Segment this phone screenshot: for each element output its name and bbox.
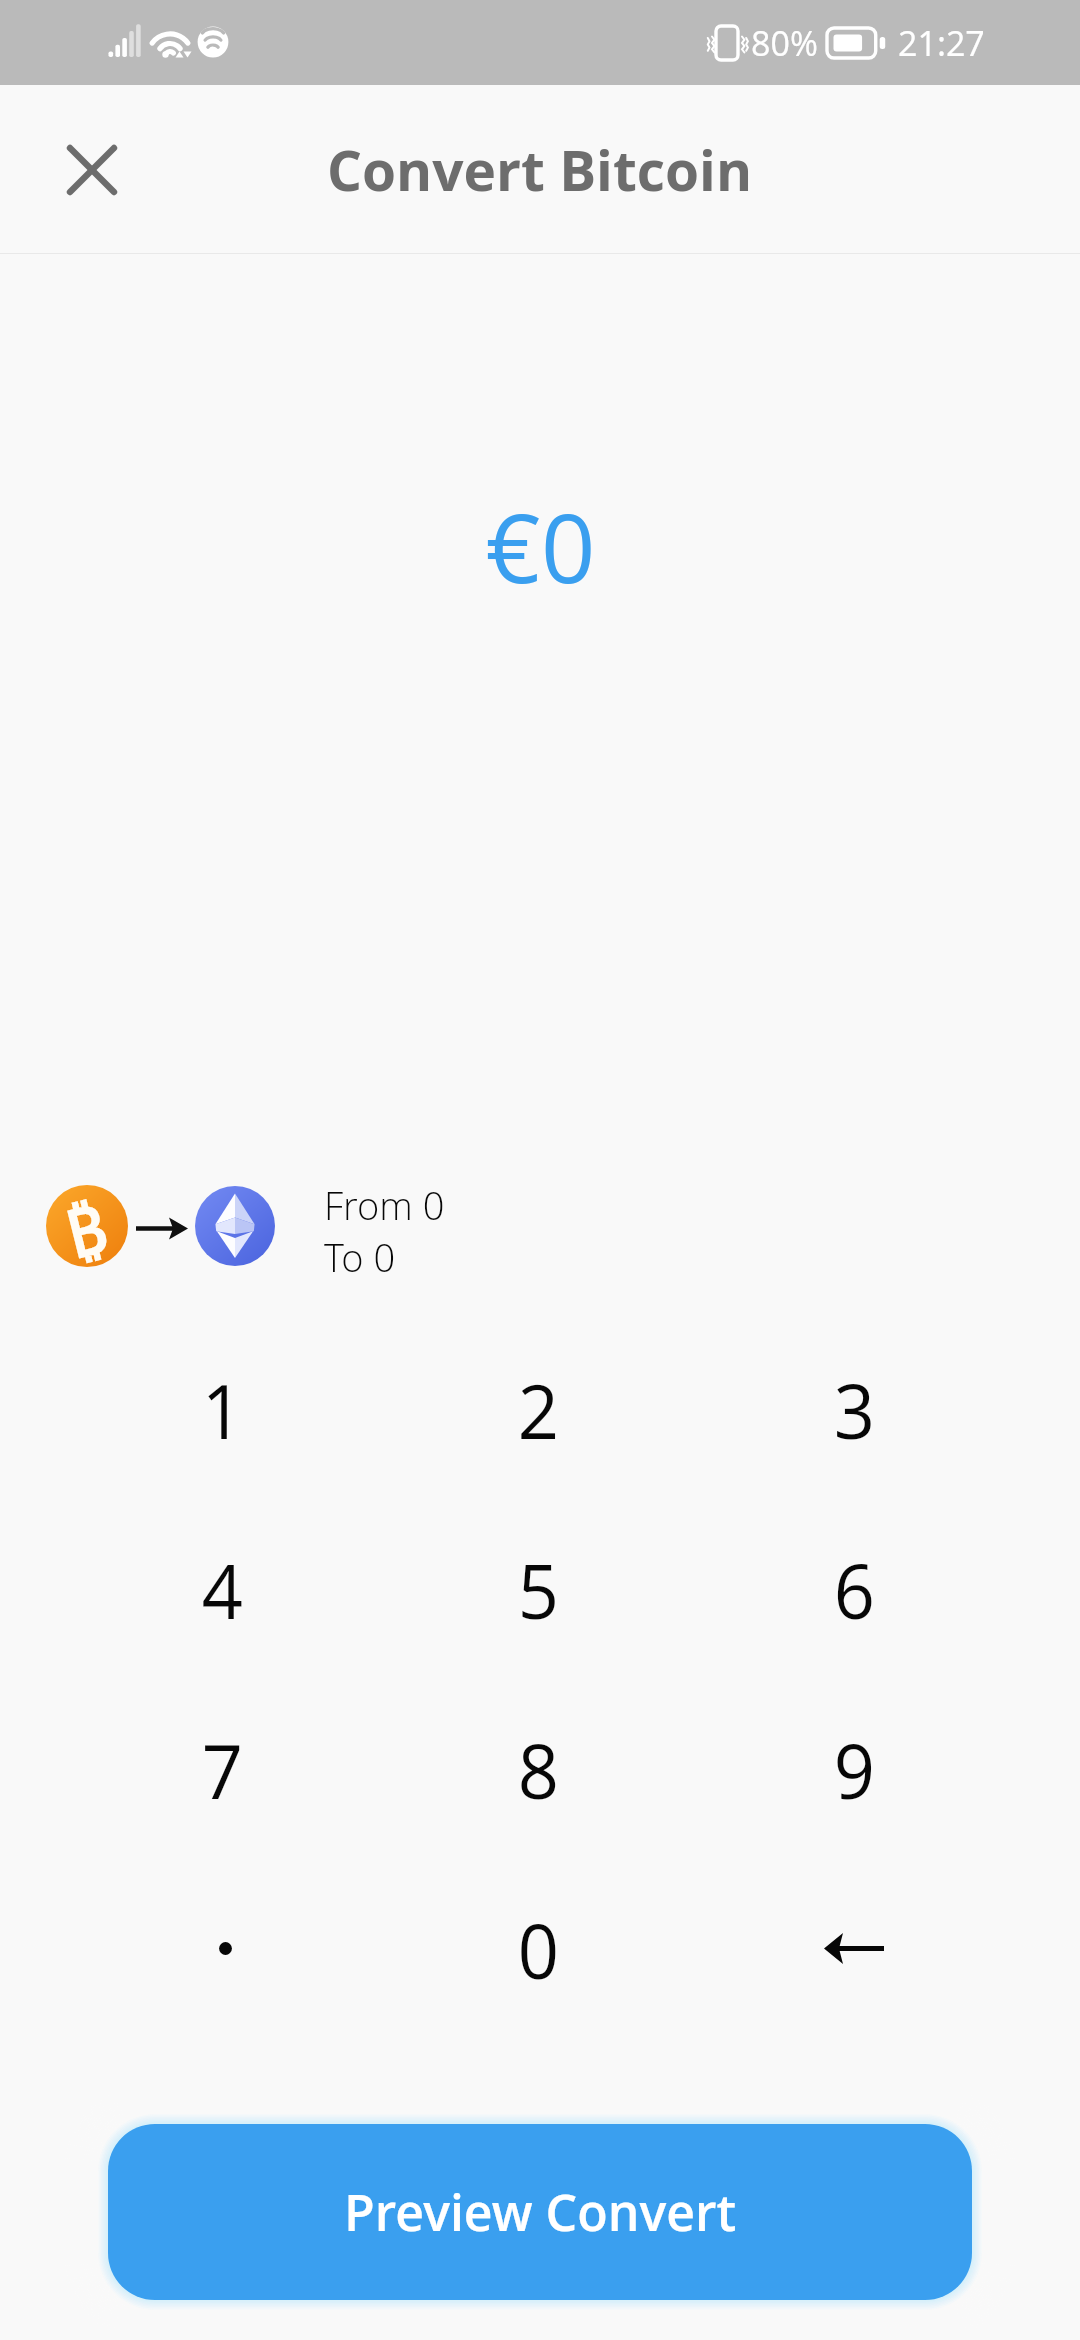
staticText: 9 xyxy=(834,1719,875,1821)
staticText: 2 xyxy=(518,1359,559,1461)
button[interactable]: Preview Convert xyxy=(108,2124,972,2300)
staticText: 1 xyxy=(202,1359,243,1461)
button[interactable]: Close xyxy=(48,126,136,214)
staticText: 7 xyxy=(202,1719,243,1821)
staticText: 6 xyxy=(834,1539,875,1641)
staticText: 4 xyxy=(202,1539,243,1641)
staticText: 3 xyxy=(834,1359,875,1461)
button[interactable]: 1 xyxy=(64,1320,380,1500)
button[interactable]: 9 xyxy=(696,1680,1012,1860)
staticText: Convert Bitcoin xyxy=(327,132,753,207)
staticText: 21:27 xyxy=(898,20,985,66)
staticText: €0 xyxy=(485,481,596,610)
staticText: Preview Convert xyxy=(344,2178,737,2246)
staticText: From 0 xyxy=(324,1179,445,1231)
staticText: 80% xyxy=(751,20,818,66)
staticText: 5 xyxy=(518,1539,559,1641)
button[interactable]: 6 xyxy=(696,1500,1012,1680)
button[interactable]: 8 xyxy=(380,1680,696,1860)
button[interactable]: 5 xyxy=(380,1500,696,1680)
staticText: 0 xyxy=(518,1899,559,2001)
button[interactable]: 0 xyxy=(380,1860,696,2040)
staticText: ₿ xyxy=(57,1181,113,1269)
staticText: 8 xyxy=(518,1719,559,1821)
button[interactable]: Backspace xyxy=(696,1860,1012,2040)
button[interactable]: 3 xyxy=(696,1320,1012,1500)
button[interactable]: 4 xyxy=(64,1500,380,1680)
button[interactable]: Decimal point xyxy=(64,1860,380,2040)
staticText: To 0 xyxy=(324,1231,396,1283)
button[interactable]: 2 xyxy=(380,1320,696,1500)
button[interactable]: 7 xyxy=(64,1680,380,1860)
